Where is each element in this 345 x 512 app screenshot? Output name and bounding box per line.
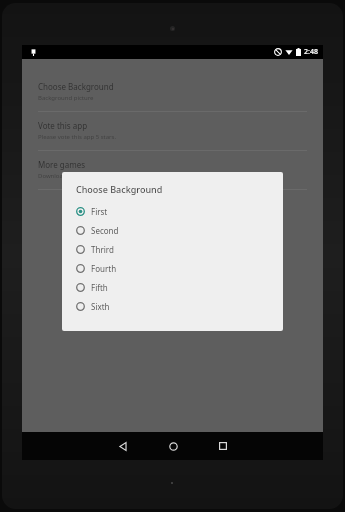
button[interactable]: Second — [62, 221, 283, 240]
staticText: Fourth — [91, 263, 117, 274]
staticText: Background picture — [38, 94, 94, 102]
button[interactable]: Choose Background — [22, 73, 323, 111]
staticText: 2:48 — [304, 47, 318, 57]
button[interactable]: First — [62, 202, 283, 221]
staticText: Vote this app — [38, 120, 88, 131]
button[interactable]: Fifth — [62, 278, 283, 297]
staticText: Thrird — [91, 244, 114, 255]
button[interactable]: Back — [106, 432, 140, 460]
button[interactable]: Vote this app — [22, 112, 323, 150]
staticText: More games — [38, 159, 86, 170]
button[interactable]: More games — [22, 151, 323, 189]
staticText: Choose Background — [38, 81, 114, 92]
staticText: Fifth — [91, 282, 108, 293]
staticText: Sixth — [91, 301, 110, 312]
button[interactable]: Fourth — [62, 259, 283, 278]
staticText: Please vote this app 5 stars. — [38, 133, 117, 141]
staticText: Download more games from play store. — [38, 172, 150, 180]
button[interactable]: Home — [156, 432, 190, 460]
staticText: Choose Background — [76, 183, 163, 195]
button[interactable]: Thrird — [62, 240, 283, 259]
button[interactable]: Sixth — [62, 297, 283, 316]
button[interactable]: Recent apps — [206, 432, 240, 460]
staticText: First — [91, 206, 108, 217]
staticText: Second — [91, 225, 119, 236]
